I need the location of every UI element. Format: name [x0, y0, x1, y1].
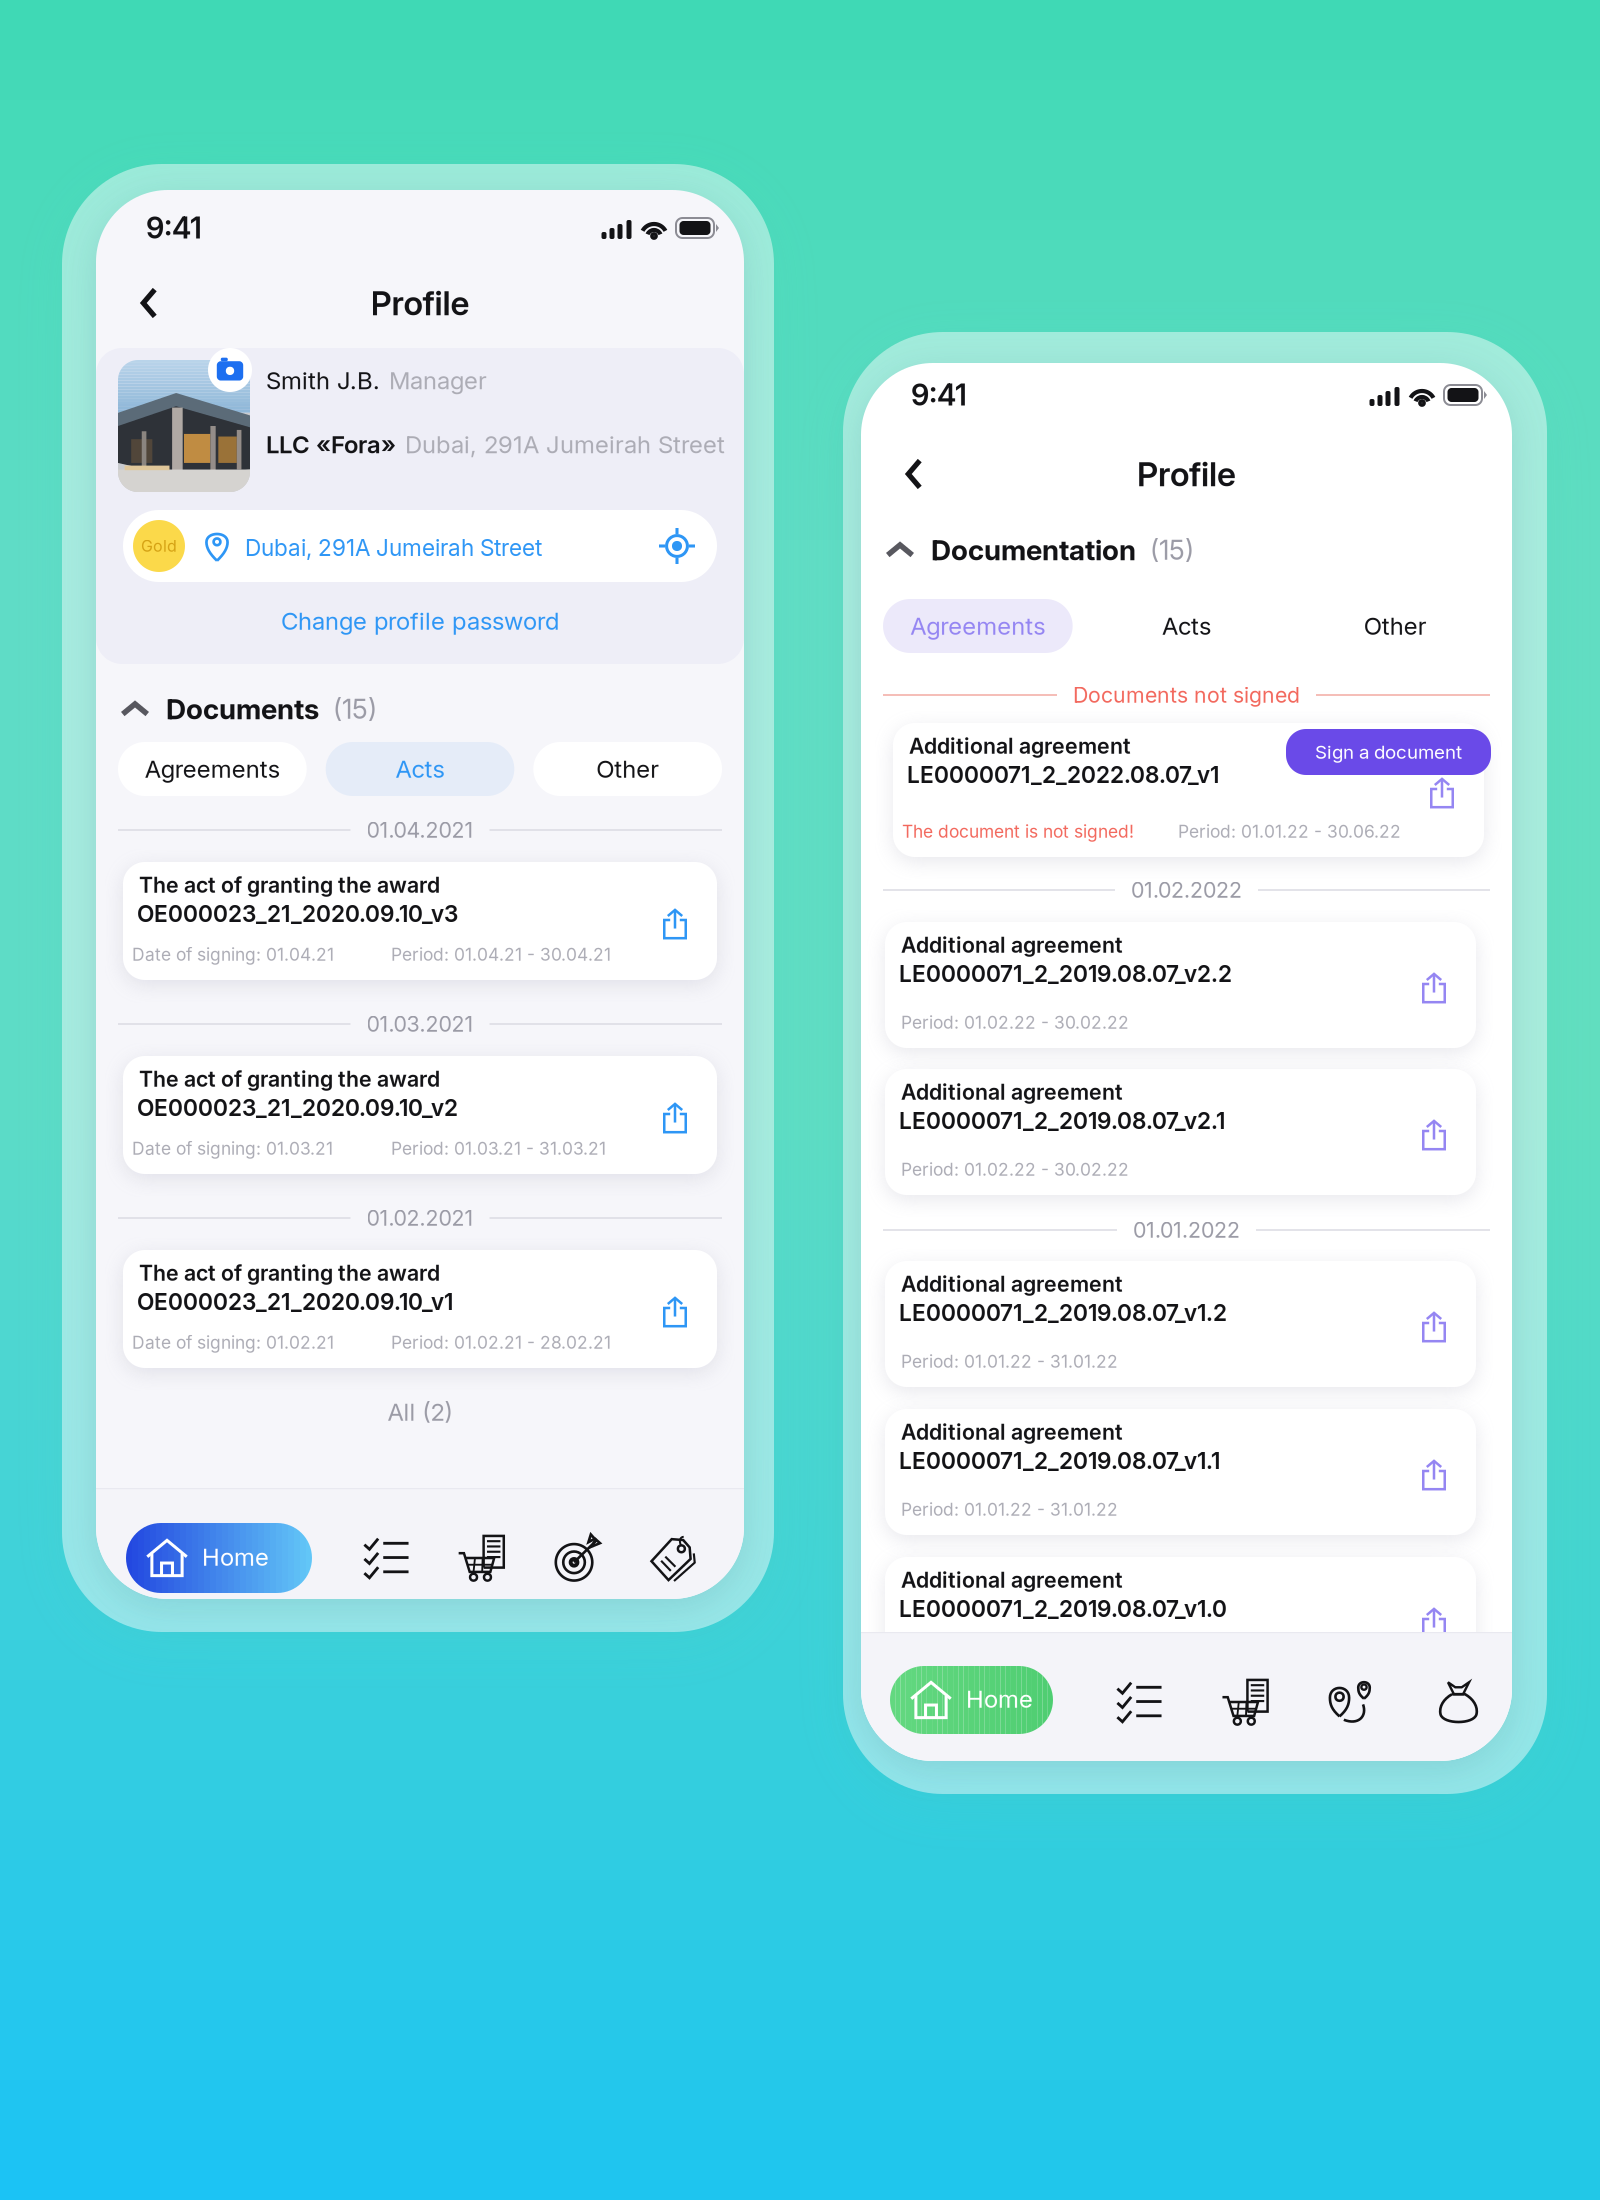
staticText: 01.02.2021 — [366, 1205, 473, 1231]
staticText: OE000023_21_2020.09.10_v1 — [137, 1288, 453, 1315]
staticText: Manager — [389, 366, 487, 395]
staticText: (15) — [333, 693, 377, 725]
button[interactable]: Orders — [1221, 1678, 1269, 1726]
staticText: Sign a document — [1315, 741, 1462, 763]
staticText: 9:41 — [911, 377, 967, 412]
staticText: Period: 01.03.21 - 31.03.21 — [391, 1138, 606, 1159]
button[interactable]: Back — [121, 275, 177, 331]
button[interactable]: Additional agreement — [885, 922, 1476, 1048]
staticText: Period: 01.01.22 - 31.01.22 — [901, 1499, 1118, 1520]
staticText: LE0000071_2_2022.08.07_v1 — [907, 761, 1219, 788]
button[interactable]: Goals — [553, 1534, 601, 1582]
staticText: Smith J.B. — [266, 366, 380, 395]
button[interactable]: Acts — [326, 742, 514, 796]
staticText: Additional agreement — [901, 1079, 1123, 1105]
staticText: Period: 01.02.21 - 28.02.21 — [391, 1332, 611, 1353]
staticText: LE0000071_2_2019.08.07_v2.2 — [899, 960, 1232, 987]
staticText: 01.03.2021 — [366, 1011, 473, 1037]
button[interactable]: Change profile password — [96, 600, 744, 642]
button[interactable]: Gold — [123, 510, 717, 582]
staticText: (15) — [1150, 534, 1194, 566]
staticText: Other — [596, 754, 659, 783]
button[interactable]: Additional agreement — [885, 1557, 1476, 1683]
staticText: Dubai, 291A Jumeirah Street — [405, 430, 725, 459]
staticText: LE0000071_2_2019.08.07_v1.2 — [899, 1299, 1227, 1326]
staticText: OE000023_21_2020.09.10_v2 — [137, 1094, 458, 1121]
staticText: Period: 01.01.22 - 31.01.22 — [901, 1647, 1118, 1668]
staticText: 01.02.2022 — [1131, 877, 1242, 903]
staticText: The act of granting the award — [139, 1260, 440, 1286]
button[interactable]: Additional agreement — [893, 723, 1484, 857]
staticText: Documentation — [931, 533, 1136, 567]
button[interactable]: All (2) — [118, 1390, 722, 1434]
staticText: LE0000071_2_2019.08.07_v1.1 — [899, 1447, 1220, 1474]
button[interactable]: Orders — [458, 1534, 506, 1582]
button[interactable]: Home — [890, 1666, 1053, 1734]
staticText: Documents not signed — [1073, 682, 1300, 708]
staticText: Gold — [141, 536, 177, 556]
staticText: Change profile password — [281, 606, 559, 635]
staticText: Acts — [395, 754, 444, 783]
staticText: Additional agreement — [909, 733, 1131, 759]
staticText: Period: 01.01.22 - 31.01.22 — [901, 1351, 1118, 1372]
button[interactable]: The act of granting the award — [123, 1056, 717, 1174]
staticText: Profile — [1137, 454, 1236, 494]
staticText: Agreements — [910, 611, 1045, 640]
button[interactable]: Sign a document — [1286, 729, 1491, 775]
staticText: Period: 01.02.22 - 30.02.22 — [901, 1012, 1129, 1033]
button[interactable]: Tasks — [362, 1534, 410, 1582]
button[interactable]: Tasks — [1115, 1678, 1163, 1726]
staticText: Agreements — [145, 754, 280, 783]
staticText: Period: 01.04.21 - 30.04.21 — [391, 944, 611, 965]
staticText: Home — [966, 1684, 1033, 1713]
staticText: OE000023_21_2020.09.10_v3 — [137, 900, 458, 927]
staticText: Profile — [370, 283, 469, 323]
button[interactable]: Additional agreement — [885, 1261, 1476, 1387]
button[interactable]: Other — [533, 742, 722, 796]
staticText: Dubai, 291A Jumeirah Street — [245, 534, 542, 561]
button[interactable]: The act of granting the award — [123, 1250, 717, 1368]
button[interactable]: Additional agreement — [885, 1069, 1476, 1195]
staticText: Documents — [166, 692, 319, 726]
staticText: Additional agreement — [901, 932, 1123, 958]
staticText: The act of granting the award — [139, 872, 440, 898]
staticText: LLC «Fora» — [266, 430, 396, 459]
button[interactable]: Agreements — [118, 742, 307, 796]
button[interactable]: Finance — [1434, 1678, 1482, 1726]
button[interactable]: Acts — [1092, 599, 1281, 653]
staticText: Additional agreement — [901, 1567, 1123, 1593]
button[interactable]: Home — [126, 1523, 312, 1593]
staticText: Date of signing: 01.02.21 — [132, 1332, 334, 1353]
button[interactable]: Prices — [649, 1534, 697, 1582]
staticText: The act of granting the award — [139, 1066, 440, 1092]
button[interactable]: Routes — [1328, 1678, 1376, 1726]
staticText: Acts — [1162, 611, 1211, 640]
staticText: Additional agreement — [901, 1419, 1123, 1445]
button[interactable]: Back — [886, 446, 942, 502]
staticText: Home — [202, 1542, 269, 1571]
staticText: Additional agreement — [901, 1271, 1123, 1297]
button[interactable]: Other — [1300, 599, 1490, 653]
staticText: Date of signing: 01.04.21 — [132, 944, 334, 965]
staticText: The document is not signed! — [902, 821, 1134, 842]
button[interactable]: The act of granting the award — [123, 862, 717, 980]
button[interactable]: Agreements — [883, 599, 1073, 653]
button[interactable]: Collapse section — [883, 532, 917, 568]
button[interactable]: Collapse section — [118, 691, 152, 727]
staticText: All (2) — [387, 1397, 452, 1426]
staticText: 01.04.2021 — [366, 817, 473, 843]
staticText: 9:41 — [146, 210, 202, 245]
staticText: 01.01.2022 — [1133, 1217, 1240, 1243]
staticText: LE0000071_2_2019.08.07_v2.1 — [899, 1107, 1225, 1134]
staticText: Period: 01.02.22 - 30.02.22 — [901, 1159, 1129, 1180]
staticText: Other — [1364, 611, 1427, 640]
button[interactable]: Additional agreement — [885, 1409, 1476, 1535]
staticText: LE0000071_2_2019.08.07_v1.0 — [899, 1595, 1227, 1622]
staticText: Period: 01.01.22 - 30.06.22 — [1178, 821, 1401, 842]
staticText: Date of signing: 01.03.21 — [132, 1138, 333, 1159]
